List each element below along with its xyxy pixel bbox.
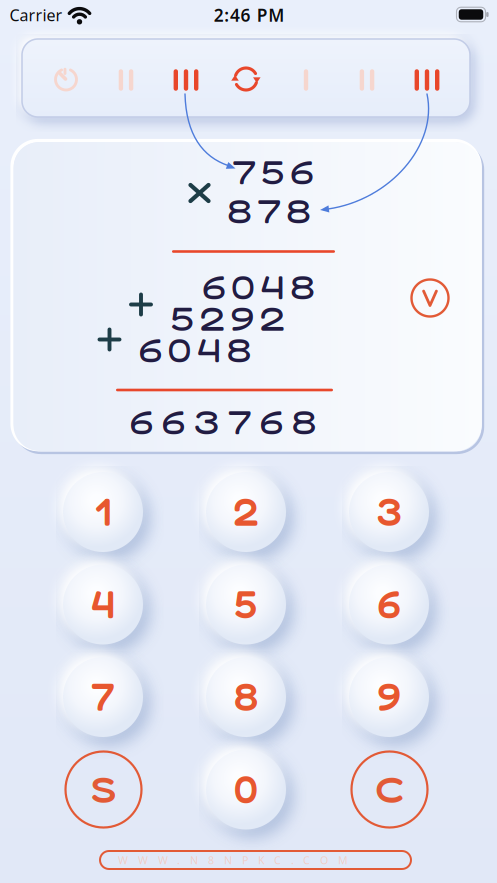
staticText: 8: [227, 331, 251, 370]
staticText: 8: [292, 403, 316, 442]
staticText: 3: [194, 403, 219, 442]
button[interactable]: 0: [206, 749, 286, 829]
staticText: 2:46 PM: [214, 3, 284, 26]
button[interactable]: Timer: [44, 57, 88, 101]
button[interactable]: Clear: [351, 751, 427, 827]
button[interactable]: 7: [63, 657, 143, 737]
staticText: 0: [168, 331, 191, 370]
staticText: 2: [200, 300, 225, 338]
staticText: 7: [257, 192, 280, 231]
staticText: 7: [232, 153, 255, 192]
staticText: 6: [130, 403, 153, 442]
button[interactable]: Three digits: [164, 58, 208, 102]
staticText: 1: [95, 489, 111, 535]
staticText: WWW.N8NPKC.COM: [118, 853, 348, 867]
button[interactable]: 4: [63, 564, 143, 644]
staticText: 4: [197, 331, 221, 370]
button[interactable]: New problem: [224, 57, 268, 101]
button[interactable]: Show steps: [65, 751, 141, 827]
staticText: 3: [376, 489, 401, 535]
button[interactable]: Three digits: [405, 58, 449, 102]
staticText: 8: [234, 674, 258, 720]
staticText: 8: [286, 192, 310, 231]
staticText: 4: [91, 582, 115, 627]
staticText: 2: [233, 489, 258, 535]
button[interactable]: 8: [206, 657, 286, 737]
staticText: C: [375, 768, 403, 811]
staticText: 0: [234, 767, 258, 812]
staticText: 7: [91, 674, 115, 720]
staticText: 2: [260, 300, 285, 338]
button[interactable]: 1: [63, 472, 143, 552]
button[interactable]: Two digits: [345, 58, 389, 102]
button[interactable]: Verify: [411, 279, 448, 316]
staticText: 6: [377, 582, 400, 627]
staticText: 6: [290, 153, 313, 192]
staticText: 0: [231, 268, 254, 307]
staticText: 8: [227, 192, 251, 231]
button[interactable]: Two digits: [104, 58, 148, 102]
staticText: 8: [290, 268, 314, 307]
staticText: 7: [228, 403, 251, 442]
staticText: 6: [139, 331, 162, 370]
staticText: 5: [234, 582, 257, 627]
button[interactable]: 2: [206, 472, 286, 552]
button[interactable]: 9: [349, 657, 429, 737]
staticText: S: [91, 768, 116, 811]
staticText: 5: [261, 153, 284, 192]
button[interactable]: 5: [206, 564, 286, 644]
staticText: 6: [260, 403, 283, 442]
staticText: 6: [162, 403, 185, 442]
button[interactable]: One digit: [284, 58, 328, 102]
staticText: Carrier: [9, 4, 62, 26]
button[interactable]: 6: [349, 564, 429, 644]
staticText: 5: [171, 300, 194, 338]
staticText: 6: [202, 268, 225, 307]
staticText: 4: [260, 268, 284, 307]
staticText: 9: [377, 674, 400, 720]
staticText: 9: [231, 300, 254, 338]
button[interactable]: 3: [349, 472, 429, 552]
